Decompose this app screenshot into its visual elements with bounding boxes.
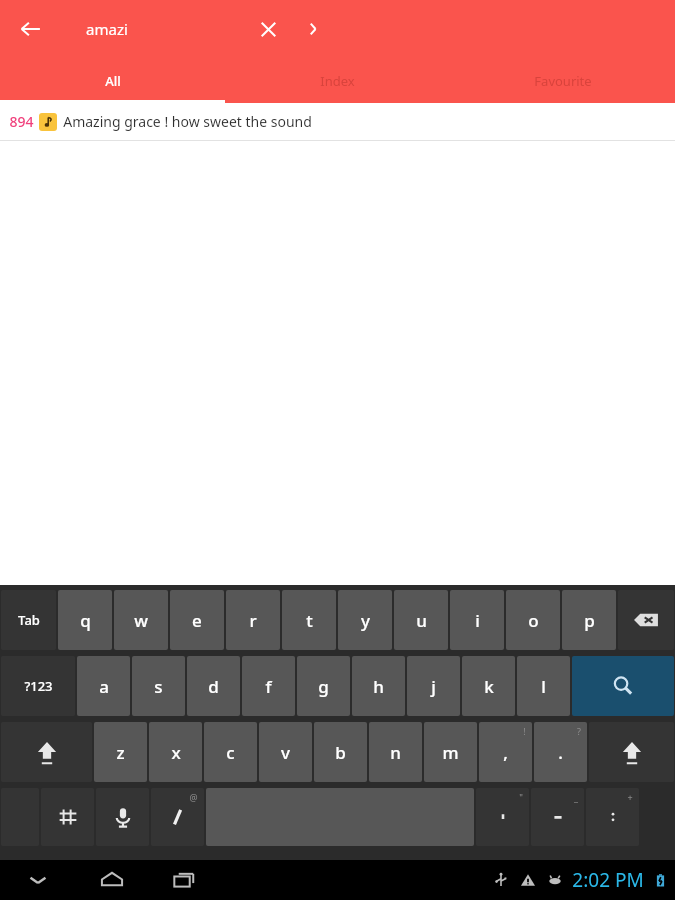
button[interactable]: Shift <box>589 722 674 782</box>
staticText: l <box>541 675 546 698</box>
staticText: + <box>627 791 633 803</box>
button[interactable]: 894 <box>0 103 675 140</box>
button[interactable]: d <box>187 656 240 716</box>
button[interactable]: k <box>462 656 515 716</box>
button[interactable]: c <box>204 722 257 782</box>
button[interactable]: y <box>338 590 392 650</box>
button[interactable]: amazi <box>60 0 245 58</box>
button[interactable]: l <box>517 656 570 716</box>
staticText: s <box>154 675 163 698</box>
button[interactable]: g <box>297 656 350 716</box>
button[interactable]: Tab <box>1 590 56 650</box>
button[interactable]: t <box>282 590 336 650</box>
staticText: Tab <box>18 611 40 629</box>
staticText: m <box>442 741 459 764</box>
button[interactable]: u <box>394 590 448 650</box>
staticText: b <box>335 741 346 764</box>
button[interactable]: i <box>450 590 504 650</box>
button[interactable]: Backspace <box>618 590 674 650</box>
staticText: Favourite <box>534 72 592 90</box>
button[interactable]: o <box>506 590 560 650</box>
staticText: p <box>584 609 595 632</box>
button[interactable]: , <box>479 722 532 782</box>
staticText: i <box>475 609 480 632</box>
staticText: o <box>528 609 539 632</box>
staticText: y <box>361 609 370 632</box>
button[interactable]: Colon <box>586 788 639 846</box>
button[interactable]: . <box>534 722 587 782</box>
button[interactable]: Clear search <box>245 0 291 58</box>
button[interactable]: Voice input <box>96 788 149 846</box>
staticText: " <box>519 791 523 803</box>
staticText: c <box>226 741 235 764</box>
staticText: k <box>484 675 494 698</box>
button[interactable]: Home <box>76 860 148 900</box>
button[interactable]: Favourite <box>450 58 675 103</box>
staticText: g <box>318 675 329 698</box>
staticText: _ <box>574 791 578 803</box>
button[interactable]: f <box>242 656 295 716</box>
staticText: v <box>281 741 290 764</box>
button[interactable]: h <box>352 656 405 716</box>
staticText: t <box>306 609 313 632</box>
staticText: amazi <box>86 19 128 39</box>
button[interactable]: Dash <box>531 788 584 846</box>
button[interactable]: Back <box>0 0 60 58</box>
staticText: n <box>390 741 401 764</box>
staticText: a <box>99 675 109 698</box>
button[interactable]: z <box>94 722 147 782</box>
button[interactable]: Hide keyboard <box>0 860 76 900</box>
button[interactable]: q <box>58 590 112 650</box>
staticText: ?123 <box>24 677 53 695</box>
staticText: 2:02 PM <box>572 867 644 893</box>
staticText: d <box>208 675 219 698</box>
staticText: f <box>265 675 272 698</box>
button[interactable]: e <box>170 590 224 650</box>
staticText: ! <box>523 725 526 737</box>
button[interactable]: b <box>314 722 367 782</box>
button[interactable]: Recent apps <box>148 860 220 900</box>
staticText: u <box>416 609 427 632</box>
button[interactable]: x <box>149 722 202 782</box>
staticText: Index <box>320 72 355 90</box>
button[interactable]: j <box>407 656 460 716</box>
staticText: ? <box>577 725 581 737</box>
button[interactable]: Apostrophe <box>476 788 529 846</box>
button[interactable]: Next result <box>291 0 335 58</box>
button[interactable]: a <box>77 656 130 716</box>
staticText: All <box>105 72 121 90</box>
staticText: . <box>558 741 563 764</box>
staticText: 894 <box>9 112 34 131</box>
button[interactable]: Search <box>572 656 674 716</box>
button[interactable]: v <box>259 722 312 782</box>
button[interactable]: w <box>114 590 168 650</box>
button[interactable]: p <box>562 590 616 650</box>
button[interactable]: Switch keyboard <box>41 788 94 846</box>
button[interactable]: n <box>369 722 422 782</box>
button[interactable]: All <box>0 58 225 103</box>
button[interactable]: m <box>424 722 477 782</box>
button[interactable]: Slash <box>151 788 204 846</box>
staticText: e <box>192 609 202 632</box>
staticText: j <box>431 675 436 698</box>
staticText: x <box>171 741 181 764</box>
staticText: z <box>116 741 125 764</box>
button[interactable]: Shift <box>1 722 92 782</box>
button[interactable]: ?123 <box>1 656 75 716</box>
button[interactable]: r <box>226 590 280 650</box>
staticText: , <box>503 741 508 764</box>
staticText: r <box>249 609 257 632</box>
staticText: Amazing grace ! how sweet the sound <box>63 112 312 131</box>
button[interactable]: s <box>132 656 185 716</box>
staticText: w <box>134 609 148 632</box>
staticText: q <box>80 609 91 632</box>
staticText: h <box>373 675 384 698</box>
staticText: @ <box>189 791 198 803</box>
